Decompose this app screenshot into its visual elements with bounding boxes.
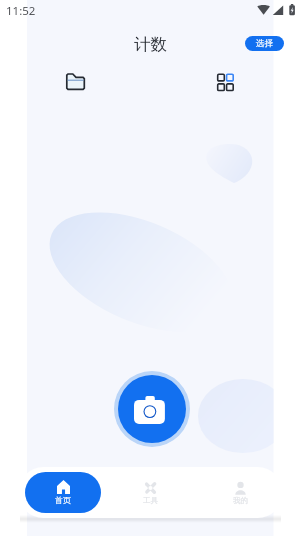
- staticText: 计数: [0, 34, 301, 55]
- button[interactable]: 我的: [208, 472, 272, 513]
- button[interactable]: 工具: [118, 472, 182, 513]
- button[interactable]: Grid view: [212, 69, 238, 95]
- staticText: 选择: [256, 38, 273, 49]
- button[interactable]: 首页: [25, 472, 101, 513]
- button[interactable]: Camera: [114, 371, 190, 447]
- staticText: 工具: [143, 496, 158, 505]
- staticText: 首页: [55, 495, 71, 505]
- staticText: 我的: [233, 496, 248, 505]
- button[interactable]: Folders: [62, 69, 88, 95]
- button[interactable]: 选择: [245, 36, 284, 51]
- staticText: 11:52: [6, 3, 36, 19]
